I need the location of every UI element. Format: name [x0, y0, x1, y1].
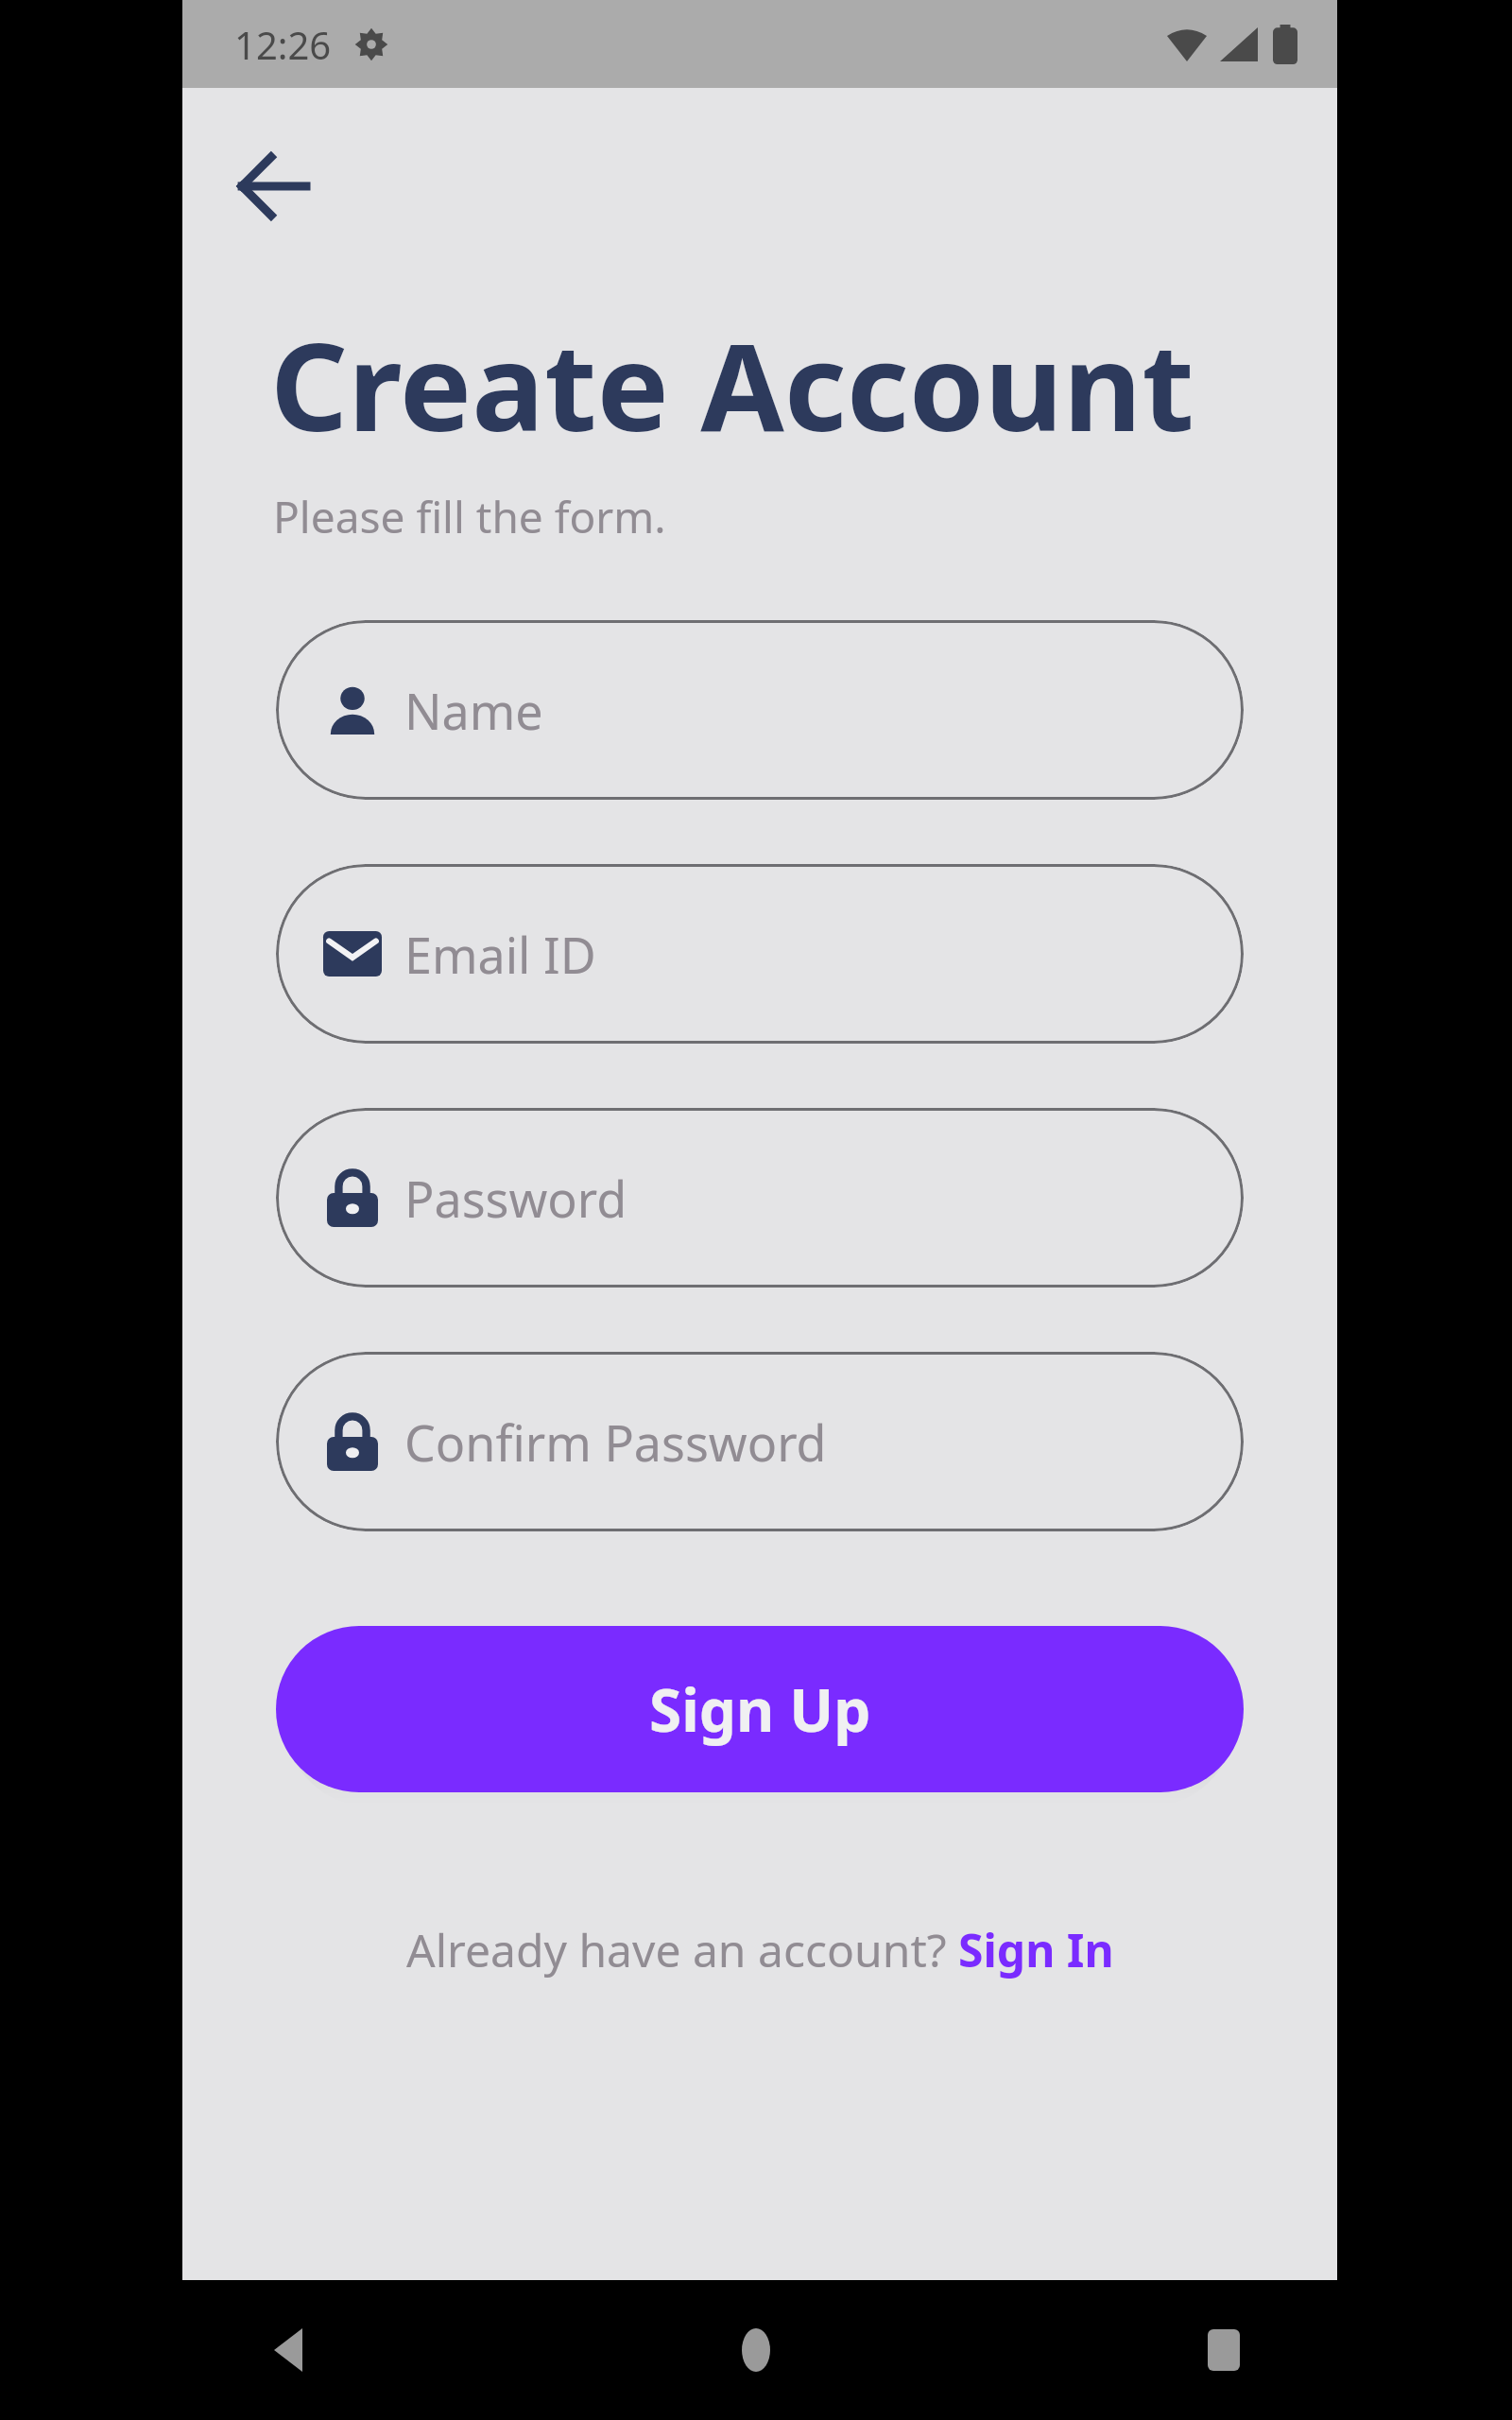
- button[interactable]: Home: [713, 2308, 799, 2393]
- staticText: Email ID: [404, 921, 596, 988]
- staticText: Confirm Password: [404, 1409, 827, 1476]
- button[interactable]: Confirm Password: [276, 1352, 1244, 1531]
- button[interactable]: Back: [246, 2308, 331, 2393]
- staticText: Please fill the form.: [273, 487, 666, 546]
- button[interactable]: Name: [276, 620, 1244, 800]
- button[interactable]: Back: [220, 133, 326, 239]
- staticText: Password: [404, 1165, 627, 1232]
- button[interactable]: Password: [276, 1108, 1244, 1288]
- button[interactable]: Already have an account? Sign In: [182, 1919, 1337, 1980]
- button[interactable]: Recents: [1181, 2308, 1266, 2393]
- staticText: Sign Up: [649, 1669, 871, 1749]
- staticText: Name: [404, 677, 543, 744]
- button[interactable]: Sign Up: [276, 1626, 1244, 1792]
- staticText: Already have an account? Sign In: [406, 1919, 1114, 1980]
- button[interactable]: Email ID: [276, 864, 1244, 1044]
- staticText: Create Account: [270, 302, 1194, 466]
- staticText: 12:26: [234, 19, 332, 70]
